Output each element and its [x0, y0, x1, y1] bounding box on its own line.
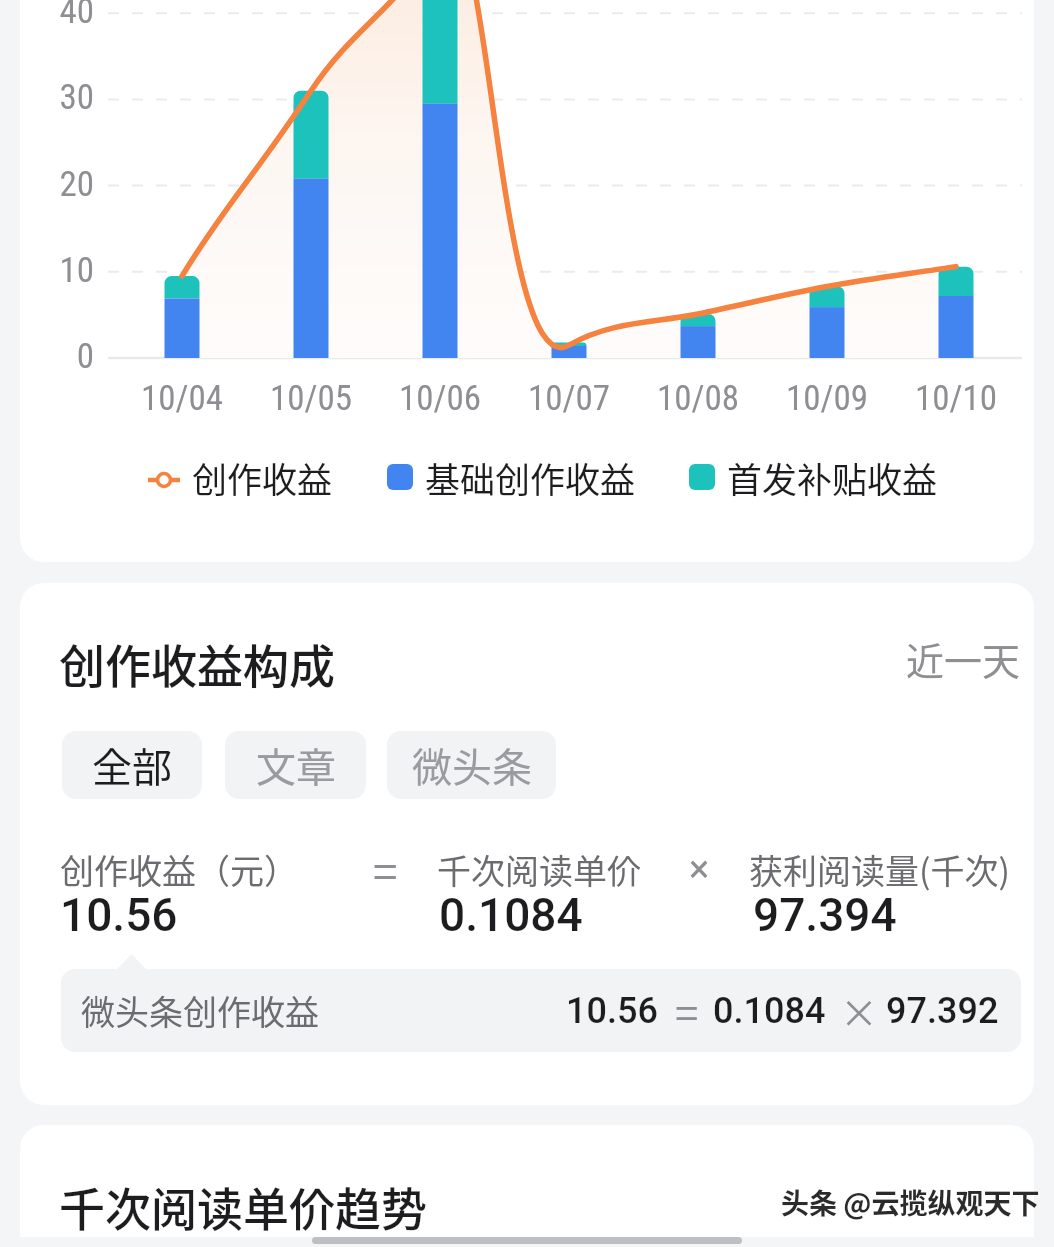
- staticText: 10/10: [876, 378, 1034, 419]
- staticText: 千次阅读单价趋势: [59, 1173, 427, 1237]
- button[interactable]: 文章: [225, 731, 366, 799]
- staticText: 头条 @云揽纵观天下: [781, 1182, 1040, 1223]
- staticText: 获利阅读量(千次): [749, 845, 1010, 894]
- staticText: 30: [24, 77, 94, 118]
- staticText: 10/08: [618, 378, 778, 419]
- button[interactable]: 全部: [62, 731, 202, 799]
- staticText: ×: [840, 983, 879, 1038]
- button[interactable]: 微头条: [387, 731, 556, 799]
- staticText: 40: [24, 0, 94, 32]
- staticText: 全部: [92, 736, 172, 794]
- staticText: 微头条创作收益: [81, 986, 319, 1035]
- staticText: 首发补贴收益: [727, 452, 938, 502]
- staticText: 0.1084: [439, 888, 583, 942]
- staticText: ×: [689, 847, 710, 892]
- staticText: =: [675, 980, 699, 1041]
- staticText: 微头条: [412, 736, 532, 794]
- staticText: 10.56: [60, 888, 178, 942]
- staticText: 10.56: [566, 990, 658, 1032]
- button[interactable]: 近一天: [898, 627, 1029, 690]
- staticText: 97.392: [886, 990, 999, 1032]
- staticText: 0.1084: [713, 990, 826, 1032]
- staticText: 千次阅读单价: [437, 845, 641, 894]
- button[interactable]: 千次阅读单价趋势: [20, 1125, 1034, 1237]
- other: 创作收益 series: [148, 464, 180, 490]
- staticText: 97.394: [753, 888, 897, 942]
- staticText: =: [373, 837, 398, 901]
- staticText: 10: [24, 250, 94, 291]
- staticText: 近一天: [906, 631, 1021, 686]
- staticText: 0: [24, 336, 94, 377]
- staticText: 创作收益（元）: [60, 845, 298, 894]
- staticText: 文章: [256, 736, 336, 794]
- staticText: 10/07: [489, 378, 649, 419]
- staticText: 10/06: [360, 378, 520, 419]
- staticText: 10/09: [747, 378, 907, 419]
- staticText: 基础创作收益: [425, 452, 636, 502]
- staticText: 10/04: [102, 378, 262, 419]
- staticText: 10/05: [231, 378, 391, 419]
- staticText: 创作收益: [192, 452, 333, 502]
- staticText: 20: [24, 164, 94, 205]
- staticText: 创作收益构成: [59, 630, 335, 697]
- button[interactable]: 微头条创作收益: [61, 969, 1021, 1052]
